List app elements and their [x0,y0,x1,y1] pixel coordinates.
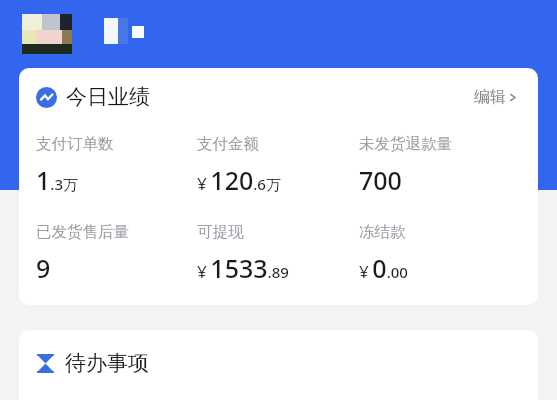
staticText: 未发货退款量 [359,134,452,154]
button[interactable]: 待办事项 [36,350,521,376]
staticText: 今日业绩 [66,84,150,110]
staticText: ¥ 0.00 [359,251,408,285]
staticText: 编辑 [474,87,506,107]
staticText: 9 [36,251,51,285]
staticText: ¥ 120.6万 [197,163,281,197]
staticText: 1.3万 [36,163,78,197]
staticText: ¥ 1533.89 [197,251,289,285]
staticText: 待办事项 [65,350,149,376]
other: 待办事项 [36,354,55,373]
staticText: 支付订单数 [36,134,114,154]
button[interactable]: 编辑 [470,83,521,111]
staticText: 已发货售后量 [36,222,129,242]
staticText: 可提现 [197,222,244,242]
staticText: 支付金额 [197,134,259,154]
staticText: 700 [359,163,402,197]
staticText: 冻结款 [359,222,406,242]
